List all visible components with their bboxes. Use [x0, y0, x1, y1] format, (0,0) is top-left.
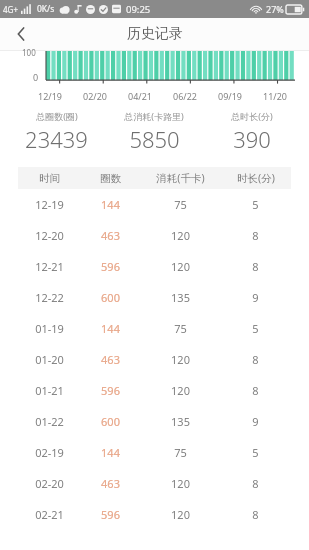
- button[interactable]: 02-19: [0, 437, 309, 468]
- staticText: 9: [252, 414, 259, 429]
- staticText: 02/20: [83, 90, 107, 102]
- button[interactable]: 02-20: [0, 468, 309, 499]
- staticText: 12/19: [38, 90, 62, 102]
- staticText: 596: [101, 259, 120, 274]
- staticText: 09/19: [218, 90, 242, 102]
- staticText: 596: [101, 507, 120, 522]
- button[interactable]: Back: [6, 19, 36, 49]
- staticText: 时间: [39, 172, 60, 185]
- button[interactable]: 01-20: [0, 344, 309, 375]
- staticText: 5: [252, 445, 259, 460]
- staticText: 8: [252, 228, 259, 243]
- staticText: 5850: [129, 124, 180, 154]
- staticText: 总圈数(圈): [36, 110, 78, 122]
- staticText: 8: [252, 259, 259, 274]
- staticText: 600: [101, 414, 120, 429]
- staticText: 01-20: [35, 352, 64, 367]
- button[interactable]: 12-20: [0, 220, 309, 251]
- staticText: 100: [22, 47, 36, 58]
- staticText: 01-22: [35, 414, 64, 429]
- staticText: 120: [171, 228, 190, 243]
- staticText: 23439: [25, 124, 88, 154]
- staticText: 9: [252, 290, 259, 305]
- staticText: 144: [101, 445, 120, 460]
- staticText: 5: [252, 197, 259, 212]
- staticText: 75: [174, 197, 187, 212]
- button[interactable]: 12-21: [0, 251, 309, 282]
- staticText: 8: [252, 507, 259, 522]
- staticText: 75: [174, 321, 187, 336]
- staticText: 120: [171, 476, 190, 491]
- staticText: 02-21: [35, 507, 64, 522]
- staticText: 8: [252, 352, 259, 367]
- staticText: 135: [171, 414, 190, 429]
- staticText: 600: [101, 290, 120, 305]
- staticText: 144: [101, 197, 120, 212]
- staticText: 消耗(千卡): [156, 171, 205, 185]
- staticText: 4G+: [3, 4, 18, 15]
- staticText: 120: [171, 259, 190, 274]
- staticText: 历史记录: [127, 25, 183, 43]
- staticText: 总时长(分): [231, 110, 273, 122]
- staticText: 02-19: [35, 445, 64, 460]
- staticText: 01-21: [35, 383, 64, 398]
- staticText: 390: [233, 124, 271, 154]
- staticText: 8: [252, 383, 259, 398]
- staticText: 12-22: [35, 290, 64, 305]
- button[interactable]: 01-22: [0, 406, 309, 437]
- staticText: 09:25: [126, 3, 151, 16]
- staticText: 120: [171, 383, 190, 398]
- staticText: 0K/s: [37, 3, 55, 15]
- staticText: 11/20: [263, 90, 287, 102]
- staticText: 120: [171, 352, 190, 367]
- staticText: 02-20: [35, 476, 64, 491]
- staticText: 04/21: [128, 90, 152, 102]
- staticText: 135: [171, 290, 190, 305]
- staticText: 596: [101, 383, 120, 398]
- staticText: 时长(分): [237, 171, 275, 185]
- staticText: 75: [174, 445, 187, 460]
- staticText: 12-19: [35, 197, 64, 212]
- button[interactable]: 12-19: [0, 189, 309, 220]
- staticText: 0: [33, 71, 39, 83]
- staticText: 总消耗(卡路里): [124, 110, 184, 122]
- staticText: 120: [171, 507, 190, 522]
- button[interactable]: 12-22: [0, 282, 309, 313]
- staticText: 5: [252, 321, 259, 336]
- button[interactable]: 02-21: [0, 499, 309, 530]
- button[interactable]: 01-21: [0, 375, 309, 406]
- staticText: 12-21: [35, 259, 64, 274]
- staticText: 8: [252, 476, 259, 491]
- staticText: 12-20: [35, 228, 64, 243]
- staticText: 01-19: [35, 321, 64, 336]
- button[interactable]: 01-19: [0, 313, 309, 344]
- staticText: 463: [101, 228, 120, 243]
- staticText: 27%: [266, 3, 284, 15]
- staticText: 463: [101, 476, 120, 491]
- staticText: 144: [101, 321, 120, 336]
- staticText: 463: [101, 352, 120, 367]
- staticText: 06/22: [173, 90, 197, 102]
- staticText: 圈数: [100, 172, 121, 185]
